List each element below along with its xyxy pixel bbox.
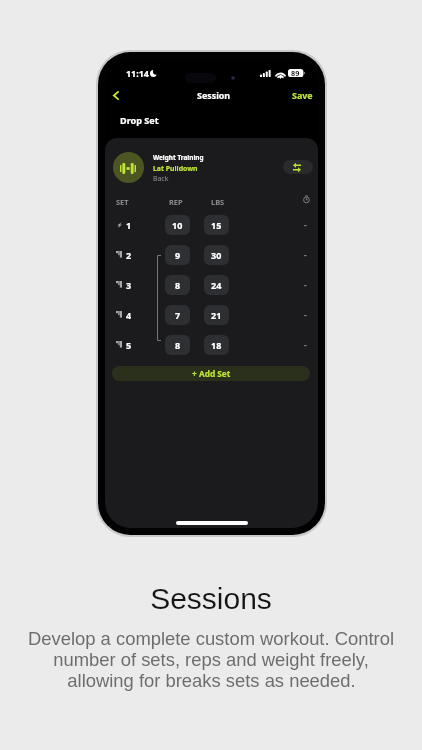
staticText: 5: [126, 339, 132, 351]
button[interactable]: Back: [106, 85, 126, 105]
staticText: Back: [153, 174, 169, 183]
button[interactable]: 10: [165, 215, 190, 235]
button[interactable]: 21: [204, 305, 229, 325]
staticText: + Add Set: [192, 368, 231, 379]
staticText: 30: [211, 249, 222, 261]
button[interactable]: 9: [165, 245, 190, 265]
button[interactable]: 8: [165, 275, 190, 295]
staticText: number of sets, reps and weight freely,: [53, 649, 369, 670]
staticText: 3: [126, 279, 132, 291]
staticText: REP: [169, 197, 183, 207]
button[interactable]: Swap exercise: [283, 160, 313, 174]
staticText: 24: [211, 279, 222, 291]
button[interactable]: Save: [287, 85, 318, 101]
button[interactable]: 24: [204, 275, 229, 295]
staticText: -: [304, 279, 307, 291]
staticText: SET: [116, 197, 129, 207]
staticText: Session: [197, 89, 231, 101]
staticText: Save: [292, 89, 313, 101]
staticText: LBS: [211, 197, 225, 207]
staticText: Develop a complete custom workout. Contr…: [28, 628, 394, 649]
staticText: 15: [211, 219, 222, 231]
staticText: 21: [211, 309, 222, 321]
staticText: 9: [175, 249, 181, 261]
staticText: 11:14: [126, 67, 149, 79]
button[interactable]: + Add Set: [112, 366, 310, 381]
staticText: allowing for breaks sets as needed.: [67, 670, 356, 691]
button[interactable]: 8: [165, 335, 190, 355]
staticText: -: [304, 339, 307, 351]
button[interactable]: 7: [165, 305, 190, 325]
staticText: Sessions: [150, 582, 272, 616]
button[interactable]: 18: [204, 335, 229, 355]
staticText: 2: [126, 249, 132, 261]
staticText: Drop Set: [120, 114, 159, 126]
button[interactable]: 30: [204, 245, 229, 265]
staticText: 8: [175, 339, 181, 351]
staticText: 1: [126, 219, 132, 231]
button[interactable]: 15: [204, 215, 229, 235]
staticText: Lat Pulldown: [153, 164, 198, 173]
staticText: -: [304, 249, 307, 261]
staticText: Weight Training: [153, 153, 204, 162]
staticText: 18: [211, 339, 222, 351]
staticText: 4: [126, 309, 132, 321]
staticText: -: [304, 219, 307, 231]
button[interactable]: Weight Training: [105, 150, 318, 183]
staticText: -: [304, 309, 307, 321]
staticText: 7: [175, 309, 181, 321]
staticText: 8: [175, 279, 181, 291]
staticText: 10: [172, 219, 183, 231]
staticText: 89: [291, 68, 300, 78]
